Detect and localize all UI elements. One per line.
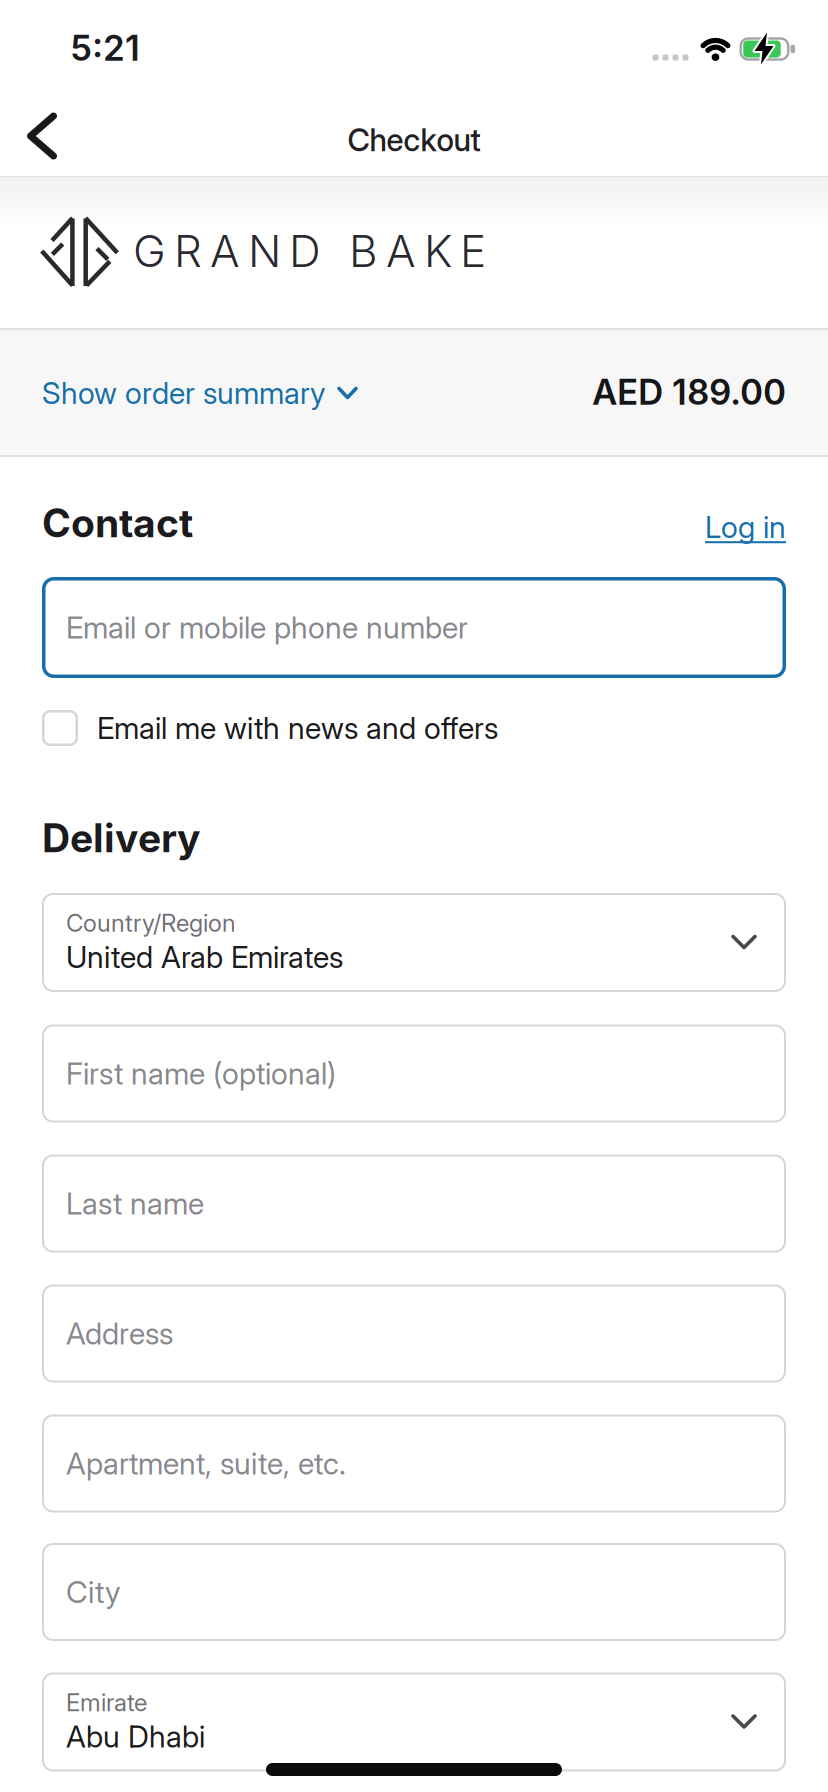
staticText: Checkout [347, 122, 480, 158]
staticText: 5:21 [70, 27, 140, 69]
staticText: Delivery [42, 815, 200, 861]
staticText: First name (optional) [66, 1056, 336, 1091]
staticText: AED 189.00 [592, 371, 786, 413]
button[interactable]: Log in [705, 509, 786, 545]
staticText: City [66, 1574, 121, 1610]
button[interactable]: Email me with news and offers [42, 710, 786, 746]
button[interactable]: Country/Region [42, 893, 786, 992]
button[interactable]: Last name [42, 1154, 786, 1252]
staticText: Email me with news and offers [97, 710, 498, 746]
staticText: Abu Dhabi [66, 1719, 205, 1754]
staticText: Log in [705, 509, 786, 545]
button[interactable]: Emirate [42, 1672, 786, 1771]
staticText: Address [66, 1316, 173, 1351]
staticText: Email or mobile phone number [66, 610, 468, 645]
button[interactable]: Address [42, 1284, 786, 1382]
staticText: GRAND BAKE [133, 225, 486, 277]
staticText: Country/Region [66, 909, 236, 937]
staticText: Emirate [66, 1688, 147, 1717]
button[interactable]: Show order summary [42, 375, 356, 411]
staticText: Show order summary [42, 375, 326, 411]
staticText: Contact [42, 500, 193, 546]
button[interactable]: City [42, 1543, 786, 1641]
staticText: Last name [66, 1186, 204, 1221]
button[interactable]: Back [18, 104, 65, 168]
staticText: Apartment, suite, etc. [66, 1446, 346, 1481]
button[interactable]: Apartment, suite, etc. [42, 1414, 786, 1512]
button[interactable]: Email or mobile phone number [42, 577, 786, 678]
staticText: United Arab Emirates [66, 939, 343, 975]
button[interactable]: First name (optional) [42, 1024, 786, 1122]
